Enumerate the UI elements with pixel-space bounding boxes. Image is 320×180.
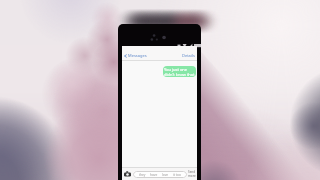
staticText: Send more	[188, 170, 196, 178]
staticText: it too	[173, 173, 181, 177]
button[interactable]: Camera	[124, 171, 131, 177]
staticText: have	[150, 173, 158, 177]
button[interactable]: Messages	[124, 53, 147, 58]
staticText: love	[162, 173, 169, 177]
staticText: Messages	[128, 53, 147, 58]
staticText: You just one didn't know that	[164, 67, 195, 77]
button[interactable]: Send more	[188, 170, 196, 178]
button[interactable]: Details	[182, 53, 195, 58]
button[interactable]: they	[133, 171, 187, 178]
button[interactable]: You just one didn't know that	[163, 66, 196, 77]
staticText: they	[139, 173, 146, 177]
